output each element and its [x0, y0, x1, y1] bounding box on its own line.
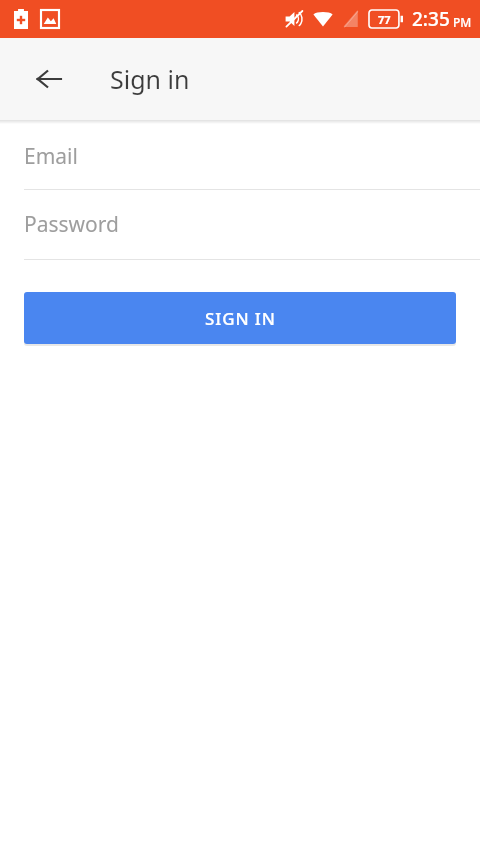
- staticText: Email: [24, 142, 78, 171]
- button[interactable]: Password: [0, 190, 480, 259]
- staticText: 2:35: [412, 6, 450, 32]
- staticText: PM: [453, 14, 472, 30]
- button[interactable]: SIGN IN: [24, 292, 456, 344]
- staticText: Sign in: [110, 62, 190, 96]
- staticText: 77: [378, 12, 391, 27]
- button[interactable]: Email: [0, 124, 480, 189]
- staticText: Password: [24, 210, 119, 239]
- staticText: SIGN IN: [205, 307, 276, 330]
- button[interactable]: Back: [25, 55, 73, 103]
